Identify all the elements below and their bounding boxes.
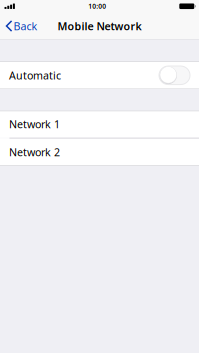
- staticText: Automatic: [9, 68, 61, 82]
- button[interactable]: Network 1: [0, 111, 199, 138]
- button[interactable]: Automatic: [0, 61, 199, 89]
- staticText: Mobile Network: [57, 19, 141, 33]
- button[interactable]: Back: [0, 12, 43, 39]
- staticText: Network 1: [9, 117, 60, 131]
- staticText: Back: [13, 19, 37, 33]
- staticText: 10:00: [88, 2, 106, 11]
- button[interactable]: Network 2: [0, 139, 199, 166]
- staticText: Network 2: [9, 145, 60, 159]
